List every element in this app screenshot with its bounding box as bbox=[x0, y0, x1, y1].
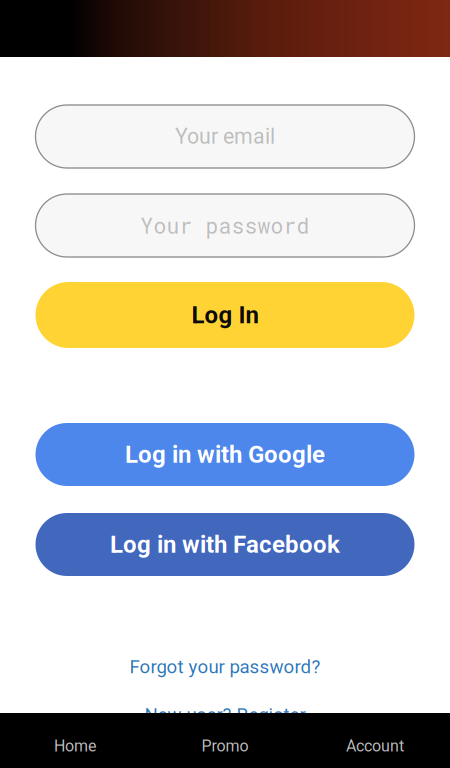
staticText: Log in with Google bbox=[125, 440, 325, 468]
staticText: Log in with Facebook bbox=[110, 530, 340, 558]
staticText: Your password bbox=[140, 211, 309, 239]
button[interactable]: New user? Register bbox=[144, 705, 305, 725]
button[interactable]: Log in with Facebook bbox=[35, 513, 414, 576]
staticText: Promo bbox=[201, 737, 248, 755]
button[interactable]: Forgot your password? bbox=[129, 656, 320, 678]
staticText: Your email bbox=[175, 124, 275, 149]
staticText: Log In bbox=[191, 301, 258, 329]
button[interactable]: Home bbox=[0, 737, 150, 755]
button[interactable]: Promo bbox=[150, 737, 300, 755]
staticText: New user? Register bbox=[144, 704, 305, 726]
staticText: Forgot your password? bbox=[129, 656, 320, 678]
staticText: Account bbox=[346, 737, 404, 755]
staticText: Home bbox=[54, 737, 96, 755]
button[interactable]: Log in with Google bbox=[35, 423, 414, 486]
button[interactable]: Account bbox=[300, 737, 450, 755]
button[interactable]: Log In bbox=[35, 282, 414, 348]
